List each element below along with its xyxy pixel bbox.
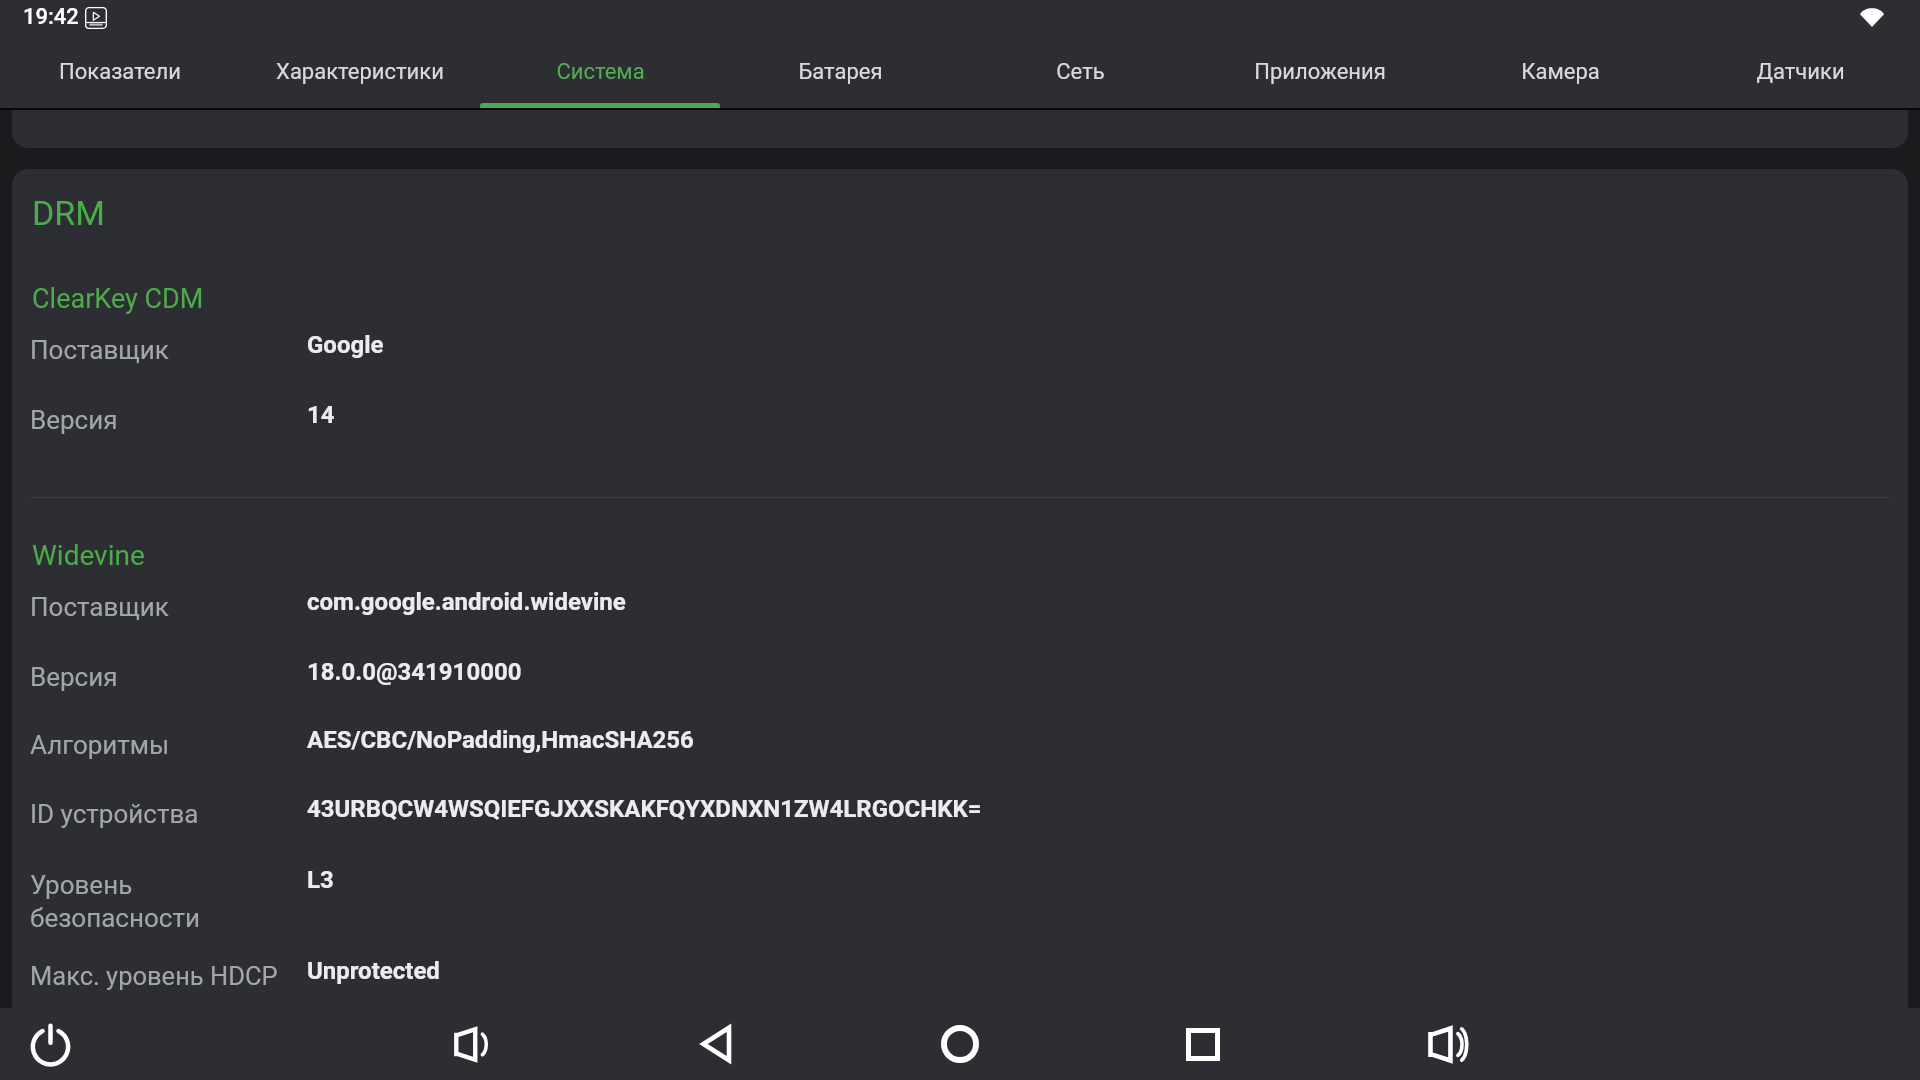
staticText: 14 (307, 401, 335, 429)
button[interactable]: DRM (32, 193, 105, 233)
staticText: Батарея (798, 59, 883, 85)
button[interactable]: Батарея (720, 37, 960, 108)
staticText: DRM (32, 193, 105, 233)
button[interactable]: Power (16, 1008, 84, 1080)
button[interactable]: Приложения (1200, 37, 1440, 108)
staticText: Показатели (59, 59, 181, 85)
button[interactable]: Home (926, 1008, 994, 1080)
staticText: Алгоритмы (30, 730, 170, 760)
button[interactable]: Характеристики (240, 37, 480, 108)
staticText: Уровень безопасности (30, 870, 200, 933)
staticText: Характеристики (276, 59, 444, 85)
staticText: Система (556, 59, 645, 85)
staticText: Камера (1521, 59, 1600, 85)
button[interactable]: Датчики (1680, 37, 1920, 108)
staticText: Версия (30, 662, 118, 692)
staticText: 43URBQCW4WSQIEFGJXXSKAKFQYXDNXN1ZW4LRGOC… (307, 795, 982, 823)
button[interactable]: Volume down (437, 1008, 505, 1080)
button[interactable]: Widevine (32, 539, 145, 572)
staticText: 19:42 (23, 4, 79, 30)
staticText: Датчики (1756, 59, 1845, 85)
button[interactable]: ID устройства (0, 794, 1920, 864)
button[interactable]: Volume up (1412, 1008, 1480, 1080)
button[interactable]: Версия (0, 400, 1920, 470)
staticText: L3 (307, 866, 334, 894)
staticText: Unprotected (307, 957, 440, 985)
staticText: Версия (30, 405, 118, 435)
button[interactable]: Алгоритмы (0, 725, 1920, 795)
button[interactable]: Версия (0, 657, 1920, 727)
staticText: Поставщик (30, 592, 169, 622)
staticText: Приложения (1254, 59, 1386, 85)
staticText: AES/CBC/NoPadding,HmacSHA256 (307, 726, 694, 754)
button[interactable]: ClearKey CDM (32, 283, 204, 315)
staticText: Widevine (32, 539, 145, 572)
button[interactable]: Сеть (960, 37, 1200, 108)
staticText: ClearKey CDM (32, 283, 204, 315)
staticText: Сеть (1056, 59, 1105, 85)
staticText: ID устройства (30, 799, 199, 829)
button[interactable]: Макс. уровень HDCP (0, 956, 1920, 1026)
staticText: Поставщик (30, 335, 169, 365)
button[interactable]: Recents (1169, 1008, 1237, 1080)
button[interactable]: Камера (1440, 37, 1680, 108)
button[interactable]: Back (683, 1008, 751, 1080)
button[interactable]: Показатели (0, 37, 240, 108)
staticText: Макс. уровень HDCP (30, 961, 278, 991)
staticText: com.google.android.widevine (307, 588, 626, 616)
button[interactable]: Поставщик (0, 587, 1920, 657)
staticText: 18.0.0@341910000 (307, 658, 522, 686)
staticText: Google (307, 331, 384, 359)
button[interactable]: Уровень безопасности (0, 865, 1920, 935)
button[interactable]: Поставщик (0, 330, 1920, 400)
button[interactable]: Система (480, 37, 720, 108)
